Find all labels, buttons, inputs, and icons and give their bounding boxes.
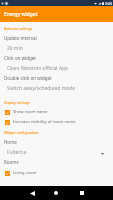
staticText: Update interval [4,35,37,41]
staticText: Living room [13,170,37,176]
button[interactable]: Update interval [0,33,113,43]
button[interactable]: Show room name [0,107,113,117]
button[interactable]: Click on widget [0,53,113,63]
button[interactable]: Increase visibility of room name [0,117,113,127]
staticText: Click on widget [4,55,36,61]
staticText: Switch away/scheduled mode [7,85,75,92]
staticText: Energy widget [4,11,38,18]
button[interactable]: Rooms [0,157,113,167]
button[interactable]: Recent apps [72,186,92,200]
button[interactable]: Back [22,186,42,200]
staticText: Increase visibility of room name [13,119,76,125]
staticText: 20 min [7,45,23,52]
staticText: Home [4,139,17,145]
staticText: Show room name [13,109,48,115]
staticText: Double click on widget [4,75,52,81]
button[interactable]: Home [46,186,66,200]
staticText: Rooms [4,159,19,165]
button[interactable]: Home [0,137,113,147]
staticText: Display settings [4,100,30,105]
staticText: Open Netatmo official App [7,65,69,72]
staticText: Behavior settings [4,26,33,31]
staticText: 3:04 [105,1,112,6]
button[interactable]: Double click on widget [0,73,113,83]
button[interactable]: Switch away/scheduled mode [0,83,113,93]
staticText: Widget configuration [4,130,39,135]
button[interactable]: Living room [0,168,113,178]
button[interactable]: More options [102,10,111,19]
button[interactable]: Open Netatmo official App [0,63,113,73]
button[interactable]: Fulterna [0,147,113,157]
button[interactable]: 20 min [0,43,113,53]
staticText: Fulterna [7,149,27,156]
